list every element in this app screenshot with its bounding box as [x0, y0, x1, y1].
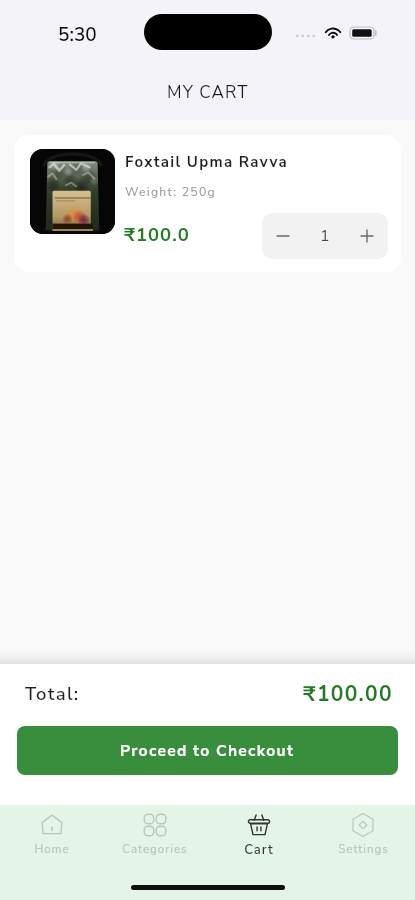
- button[interactable]: Settings: [311, 805, 415, 865]
- button[interactable]: Home: [0, 805, 103, 865]
- staticText: Settings: [338, 841, 389, 857]
- staticText: ₹100.00: [303, 680, 393, 709]
- button[interactable]: Cart: [207, 805, 311, 865]
- staticText: Weight: 250g: [125, 184, 216, 201]
- staticText: Foxtail Upma Ravva: [125, 152, 289, 172]
- button[interactable]: Categories: [103, 805, 207, 865]
- staticText: Categories: [122, 841, 188, 857]
- button[interactable]: Proceed to Checkout: [17, 726, 398, 775]
- staticText: Home: [34, 841, 70, 857]
- button[interactable]: Increase quantity: [346, 213, 388, 259]
- staticText: ₹100.0: [124, 222, 190, 247]
- staticText: Proceed to Checkout: [120, 740, 295, 761]
- staticText: MY CART: [167, 81, 249, 104]
- staticText: 5:30: [58, 22, 97, 48]
- button[interactable]: Decrease quantity: [262, 213, 304, 259]
- staticText: Total:: [25, 681, 80, 706]
- staticText: Cart: [244, 841, 274, 859]
- button[interactable]: Foxtail Upma Ravva: [14, 135, 401, 272]
- staticText: 1: [320, 225, 330, 247]
